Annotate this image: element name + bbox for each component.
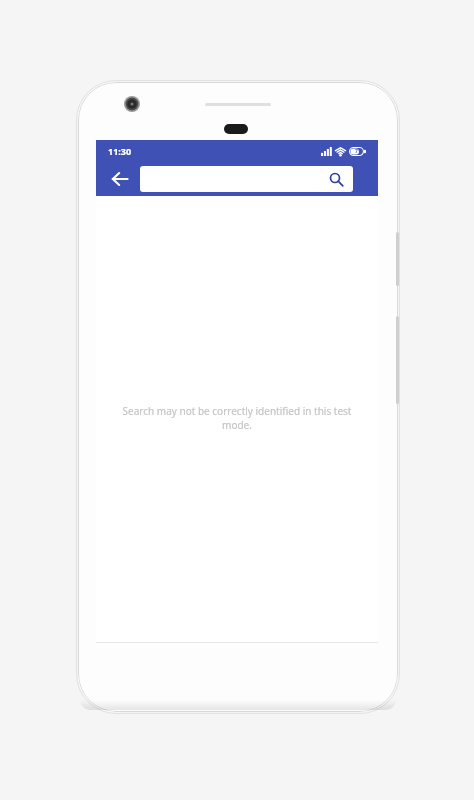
other: Search: [328, 171, 345, 188]
staticText: Search may not be correctly identified i…: [108, 404, 366, 432]
button[interactable]: Search: [140, 166, 353, 192]
button[interactable]: Back: [102, 162, 138, 196]
staticText: 71: [355, 148, 361, 155]
staticText: 11:30: [108, 145, 132, 157]
